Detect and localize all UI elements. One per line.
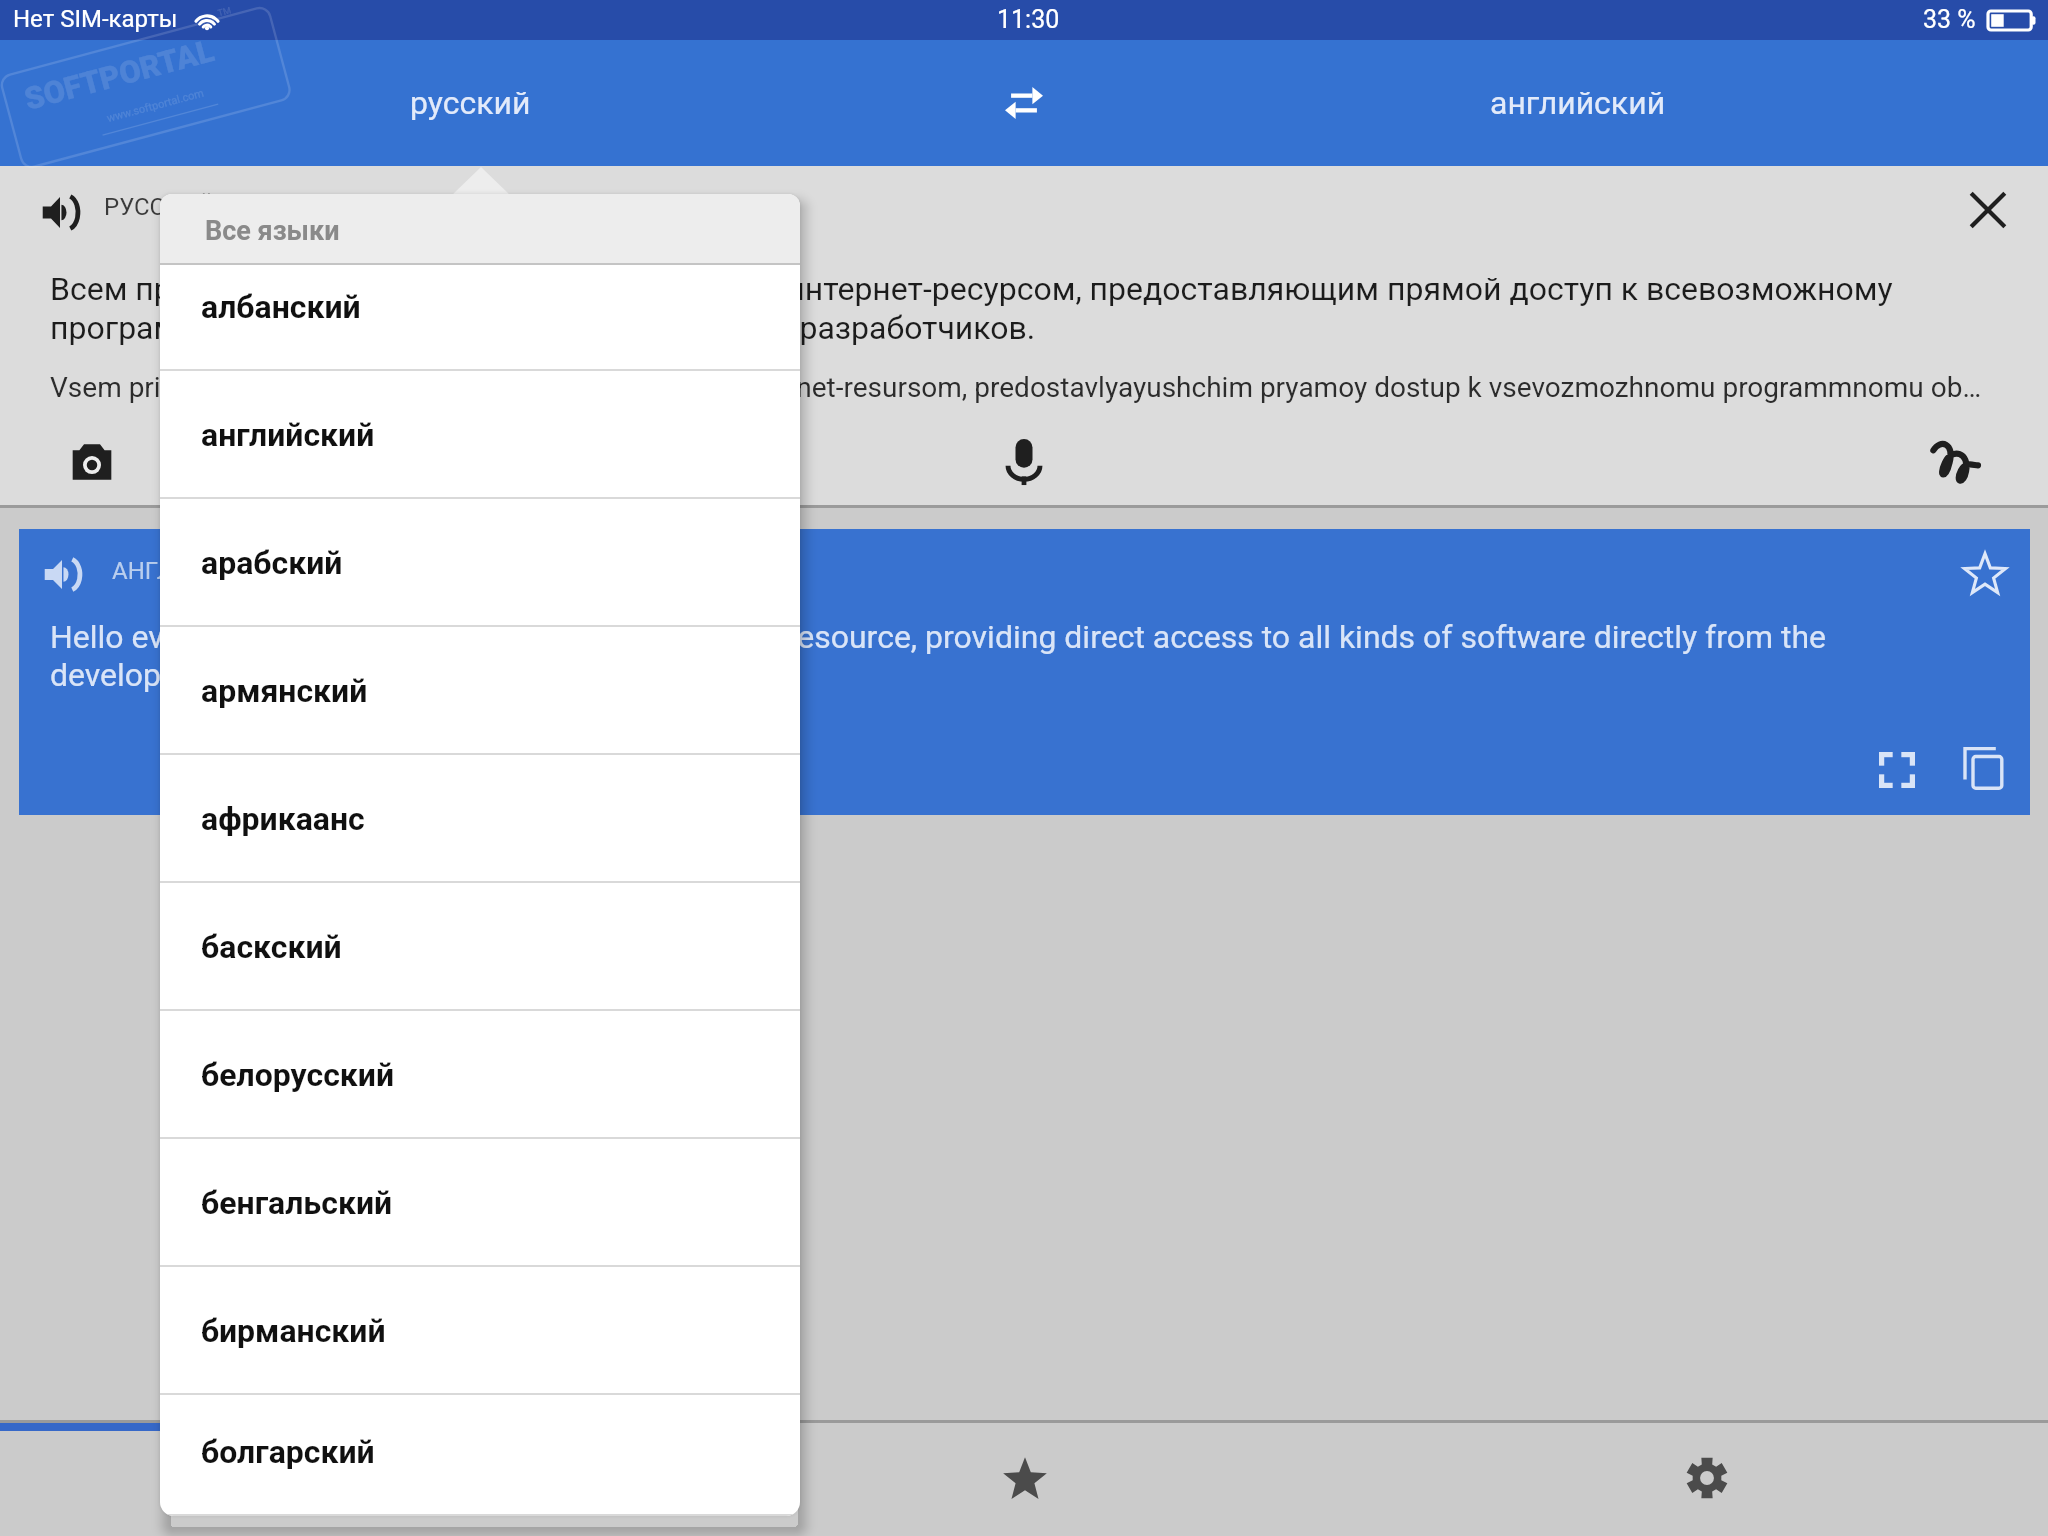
staticText: Vsem privet! SoftPortal yavlyayetsya sam… <box>50 371 1985 404</box>
button[interactable]: русский <box>0 40 940 166</box>
staticText: английский <box>201 416 375 454</box>
staticText: баскский <box>201 928 342 966</box>
button[interactable]: Settings tab <box>1366 1423 2048 1536</box>
button[interactable]: африкаанс <box>160 755 800 883</box>
staticText: РУССКИЙ <box>104 193 215 221</box>
staticText: 11:30 <box>997 5 1060 34</box>
staticText: 33 % <box>1923 5 1976 34</box>
button[interactable]: Handwriting input <box>1923 430 1987 494</box>
staticText: русский <box>410 84 531 122</box>
button[interactable]: армянский <box>160 627 800 755</box>
staticText: Hello everyone! SoftPortal is a very fam… <box>50 618 1910 694</box>
button[interactable]: арабский <box>160 499 800 627</box>
staticText: Все языки <box>205 215 340 247</box>
staticText: албанский <box>201 288 361 326</box>
button[interactable]: Всем привет! SoftPortal является известн… <box>50 262 1950 358</box>
button[interactable]: Swap languages <box>940 40 1108 166</box>
button[interactable]: бирманский <box>160 1267 800 1395</box>
staticText: армянский <box>201 672 368 710</box>
button[interactable]: Saved phrases tab <box>683 1423 1366 1536</box>
button[interactable]: Copy translation <box>1951 736 2015 800</box>
button[interactable]: Listen to translation <box>30 542 94 606</box>
button[interactable]: албанский <box>160 265 800 371</box>
staticText: бенгальский <box>201 1184 393 1222</box>
staticText: болгарский <box>201 1433 375 1471</box>
staticText: белорусский <box>201 1056 395 1094</box>
button[interactable]: Save translation <box>1952 540 2018 606</box>
button[interactable]: Fullscreen <box>1865 738 1929 802</box>
button[interactable]: Listen to source <box>28 180 92 244</box>
button[interactable]: баскский <box>160 883 800 1011</box>
button[interactable]: Clear text <box>1955 177 2021 243</box>
button[interactable]: Translate tab <box>0 1423 683 1536</box>
staticText: Нет SIM-карты <box>13 5 178 33</box>
button[interactable]: Hello everyone! SoftPortal is a very fam… <box>50 610 1910 706</box>
button[interactable]: английский <box>1108 40 2048 166</box>
button[interactable]: английский <box>160 371 800 499</box>
button[interactable]: болгарский <box>160 1395 800 1516</box>
button[interactable]: Voice input <box>992 430 1056 494</box>
staticText: английский <box>1490 84 1666 122</box>
button[interactable]: Camera input <box>60 430 124 494</box>
staticText: арабский <box>201 544 343 582</box>
staticText: Всем привет! SoftPortal является известн… <box>50 270 1950 347</box>
staticText: бирманский <box>201 1312 386 1350</box>
staticText: африкаанс <box>201 800 365 838</box>
staticText: АНГЛИЙСКИЙ <box>112 557 274 585</box>
button[interactable]: бенгальский <box>160 1139 800 1267</box>
button[interactable]: белорусский <box>160 1011 800 1139</box>
